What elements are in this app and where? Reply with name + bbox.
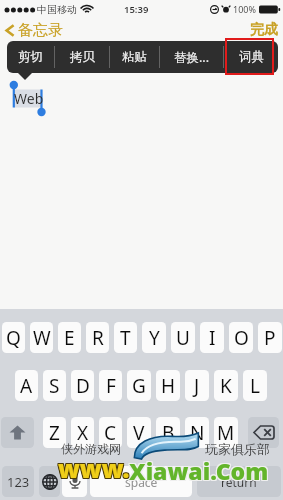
staticText: Xiawai.Com [129, 454, 269, 485]
staticText: 侠外游戏网 [61, 441, 121, 456]
button[interactable]: O [229, 322, 253, 353]
staticText: 剪切 [18, 49, 43, 65]
staticText: T [120, 325, 131, 351]
button[interactable]: K [214, 370, 238, 401]
staticText: 完成 [250, 21, 278, 39]
button[interactable]: X [71, 417, 94, 448]
staticText: 拷贝 [70, 49, 95, 65]
staticText: R [92, 325, 104, 351]
staticText: X [77, 420, 89, 446]
button[interactable]: M [214, 417, 238, 448]
button[interactable]: S [43, 370, 66, 401]
staticText: Xiawai.Com [129, 455, 269, 486]
staticText: E [64, 325, 75, 351]
button[interactable]: return [197, 466, 281, 497]
button[interactable]: H [156, 370, 180, 401]
button[interactable]: W [30, 322, 53, 353]
button[interactable]: Change keyboard [39, 466, 60, 497]
staticText: F [106, 373, 116, 399]
staticText: www. [57, 453, 129, 486]
staticText: www. [57, 451, 129, 484]
staticText: C [104, 420, 117, 446]
button[interactable]: G [127, 370, 151, 401]
button[interactable]: 替换... [160, 41, 223, 73]
button[interactable]: A [15, 370, 38, 401]
button[interactable]: F [99, 370, 122, 401]
button[interactable]: Q [2, 322, 25, 353]
staticText: P [264, 325, 276, 351]
staticText: O [234, 325, 249, 351]
button[interactable]: P [258, 322, 282, 353]
staticText: Xiawai.Com [129, 456, 269, 487]
staticText: Xiawai.Com [128, 455, 268, 486]
staticText: B [162, 420, 175, 446]
button[interactable]: space [90, 466, 192, 497]
button[interactable]: D [71, 370, 94, 401]
button[interactable]: 剪切 [7, 41, 54, 73]
staticText: return [221, 474, 257, 490]
button[interactable]: J [185, 370, 209, 401]
staticText: 玩家俱乐部 [205, 441, 270, 457]
staticText: 123 [7, 473, 30, 491]
staticText: 备忘录 [18, 21, 63, 40]
button[interactable]: 粘贴 [110, 41, 159, 73]
staticText: 替换... [174, 49, 210, 66]
staticText: Z [49, 420, 60, 446]
staticText: www. [58, 453, 130, 486]
button[interactable]: Shift [1, 417, 34, 448]
button[interactable]: Backspace [248, 417, 279, 448]
button[interactable]: U [171, 322, 195, 353]
staticText: Xiawai.Com [130, 455, 270, 486]
button[interactable]: C [99, 417, 122, 448]
staticText: H [161, 373, 176, 399]
staticText: www. [59, 453, 131, 486]
button[interactable]: 词典 [224, 41, 278, 73]
staticText: 中国移动 [37, 3, 77, 16]
button[interactable]: R [86, 322, 109, 353]
staticText: www. [58, 452, 130, 485]
button[interactable]: 123 [2, 466, 34, 497]
staticText: www. [59, 452, 131, 485]
staticText: D [76, 373, 90, 399]
button[interactable]: T [114, 322, 137, 353]
staticText: www. [58, 451, 130, 484]
staticText: N [190, 420, 205, 446]
button[interactable]: Y [142, 322, 166, 353]
button[interactable]: 拷贝 [55, 41, 109, 73]
staticText: Xiawai.Com [128, 456, 268, 487]
staticText: 粘贴 [122, 49, 147, 65]
staticText: I [209, 325, 216, 351]
staticText: Y [149, 325, 160, 351]
button[interactable]: 完成 [245, 21, 283, 39]
button[interactable]: V [127, 417, 151, 448]
button[interactable]: N [185, 417, 209, 448]
button[interactable]: B [156, 417, 180, 448]
staticText: Web [14, 89, 44, 108]
staticText: 15:39 [124, 3, 149, 16]
staticText: Xiawai.Com [130, 454, 270, 485]
staticText: L [250, 373, 260, 399]
staticText: S [49, 373, 60, 399]
button[interactable]: L [243, 370, 267, 401]
button[interactable]: 备忘录 [0, 21, 67, 40]
button[interactable]: Z [43, 417, 66, 448]
staticText: G [132, 373, 146, 399]
button[interactable]: Dictation [62, 466, 87, 497]
staticText: M [217, 420, 235, 446]
staticText: www. [59, 451, 131, 484]
staticText: space [125, 474, 158, 490]
staticText: 100% [233, 3, 256, 15]
staticText: W [33, 325, 51, 351]
staticText: U [176, 325, 190, 351]
staticText: 词典 [239, 49, 264, 65]
staticText: Q [6, 325, 21, 351]
button[interactable]: E [58, 322, 81, 353]
staticText: Xiawai.Com [130, 456, 270, 487]
staticText: www. [57, 452, 129, 485]
button[interactable]: I [200, 322, 224, 353]
staticText: J [194, 373, 200, 399]
staticText: V [133, 420, 145, 446]
staticText: A [20, 373, 33, 399]
staticText: Xiawai.Com [128, 454, 268, 485]
staticText: K [220, 373, 232, 399]
